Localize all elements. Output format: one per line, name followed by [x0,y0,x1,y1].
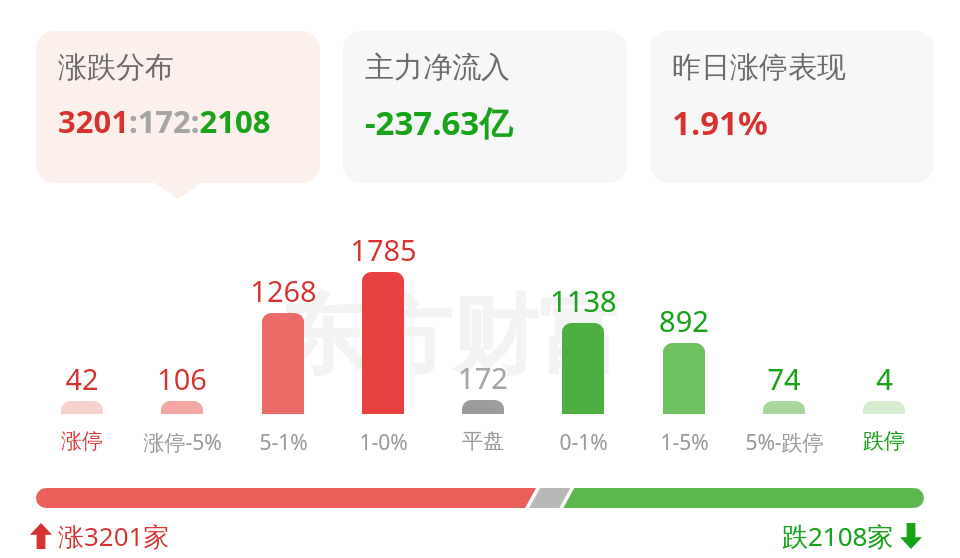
staticText: 1-5% [660,428,709,457]
button[interactable]: 涨跌分布 [36,31,320,183]
staticText: 跌2108家 [782,518,894,554]
staticText: -237.63亿 [365,100,513,145]
staticText: 5-1% [259,428,308,457]
staticText: 1268 [250,271,317,310]
button[interactable]: 主力净流入 [343,31,627,183]
staticText: 平盘 [462,428,504,454]
staticText: 1.91% [672,100,768,145]
staticText: 0-1% [559,428,608,457]
button[interactable]: 涨3201家 [30,518,170,554]
staticText: 1785 [350,230,417,269]
staticText: 3201:172:2108 [58,100,271,142]
staticText: 昨日涨停表现 [672,49,846,86]
staticText: 东方财富 [280,282,624,390]
staticText: 主力净流入 [365,49,510,86]
other: 涨跌比例条 [36,488,924,508]
staticText: 106 [157,359,207,398]
staticText: 跌停 [863,428,905,454]
staticText: 5%-跌停 [745,428,824,457]
staticText: 1138 [550,281,617,320]
staticText: 74 [767,359,801,398]
staticText: 涨停 [61,428,103,454]
staticText: 涨跌分布 [58,49,174,86]
button[interactable]: 昨日涨停表现 [650,31,934,183]
staticText: 172 [458,358,508,397]
staticText: 42 [65,359,99,398]
staticText: 4 [876,359,893,398]
staticText: 涨3201家 [58,518,170,554]
button[interactable]: 跌2108家 [782,518,922,554]
staticText: 涨停-5% [143,428,222,457]
staticText: 892 [659,301,709,340]
staticText: 1-0% [359,428,408,457]
